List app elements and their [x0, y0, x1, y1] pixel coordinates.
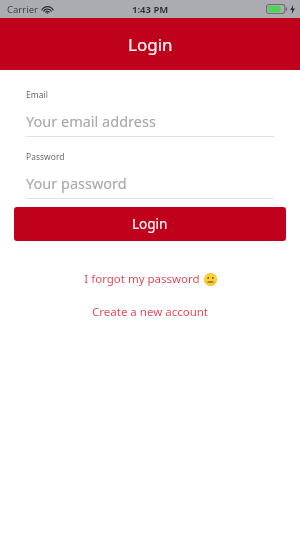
staticText: Login	[132, 215, 168, 233]
other: Wi-Fi signal	[42, 5, 53, 14]
button[interactable]: Login	[14, 207, 286, 241]
staticText: Carrier	[7, 3, 38, 16]
other: Battery charging	[266, 4, 288, 14]
staticText: Your password	[26, 173, 127, 193]
button[interactable]: Your email address	[26, 110, 274, 132]
button[interactable]: I forgot my password	[0, 271, 300, 287]
button[interactable]: Create a new account	[0, 304, 300, 320]
staticText: Create a new account	[92, 304, 208, 320]
staticText: Your email address	[26, 111, 156, 131]
button[interactable]: Your password	[26, 172, 274, 194]
staticText: I forgot my password	[84, 271, 200, 287]
staticText: Login	[128, 33, 173, 56]
staticText: Password	[26, 151, 65, 163]
staticText: 1:43 PM	[132, 3, 169, 16]
staticText: Email	[26, 89, 48, 101]
